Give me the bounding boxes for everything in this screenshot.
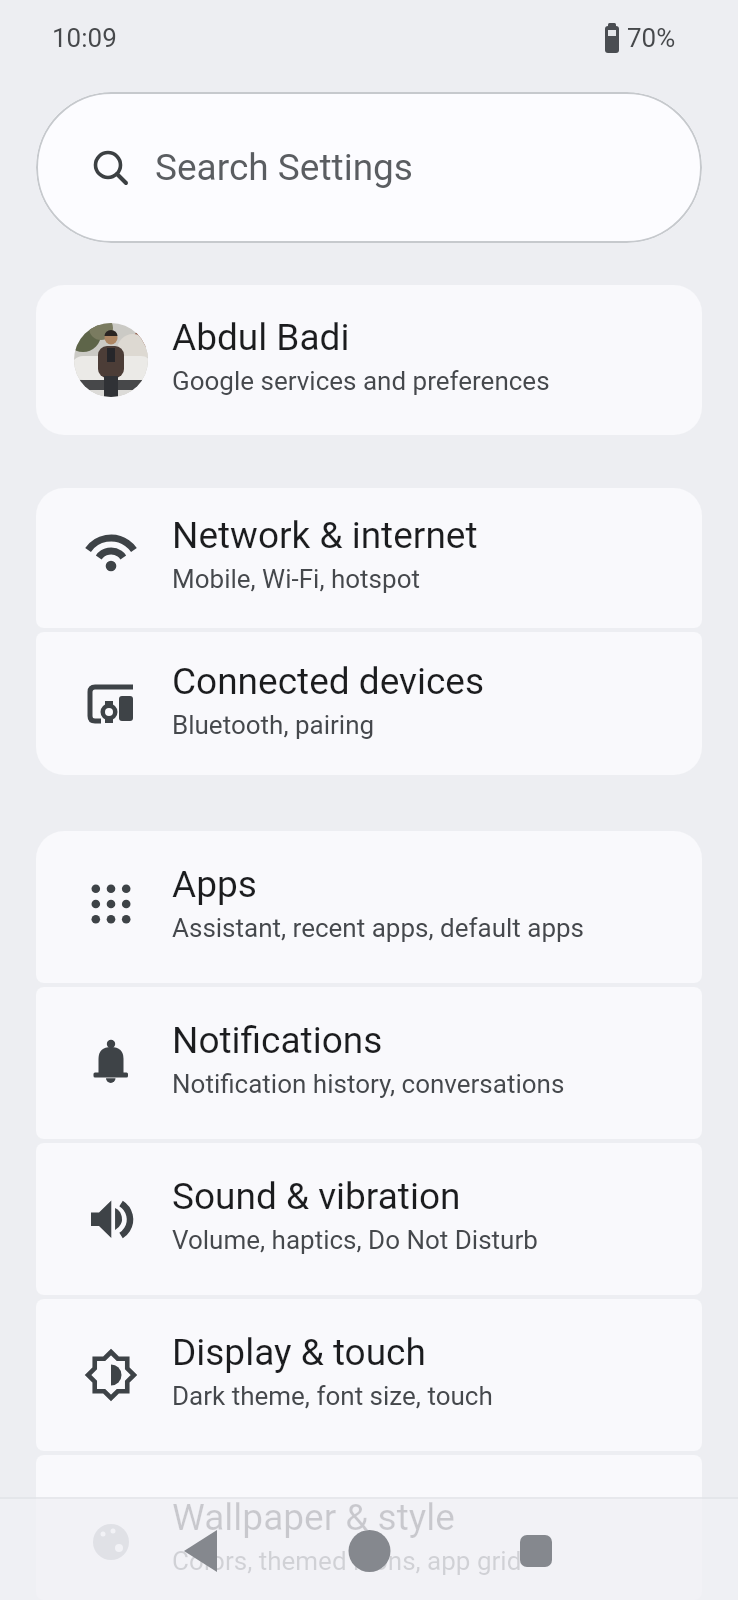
button[interactable]: Connected devices bbox=[36, 632, 702, 775]
staticText: Network & internet bbox=[172, 514, 478, 557]
staticText: 10:09 bbox=[52, 23, 117, 53]
staticText: Google services and preferences bbox=[172, 366, 550, 396]
staticText: Notifications bbox=[172, 1019, 383, 1062]
staticText: Connected devices bbox=[172, 660, 485, 703]
staticText: Bluetooth, pairing bbox=[172, 710, 375, 740]
staticText: Notification history, conversations bbox=[172, 1069, 565, 1099]
button[interactable]: Abdul Badi bbox=[36, 285, 702, 435]
staticText: Abdul Badi bbox=[172, 316, 350, 359]
button[interactable]: Sound & vibration bbox=[36, 1143, 702, 1295]
button[interactable]: Display & touch bbox=[36, 1299, 702, 1451]
staticText: Sound & vibration bbox=[172, 1175, 461, 1218]
staticText: Assistant, recent apps, default apps bbox=[172, 913, 585, 943]
button[interactable]: Network & internet bbox=[36, 488, 702, 628]
button[interactable]: Notifications bbox=[36, 987, 702, 1139]
staticText: Search Settings bbox=[155, 146, 413, 189]
staticText: Display & touch bbox=[172, 1331, 426, 1374]
button[interactable]: Apps bbox=[36, 831, 702, 983]
staticText: Apps bbox=[172, 863, 257, 906]
staticText: Mobile, Wi-Fi, hotspot bbox=[172, 564, 420, 594]
button[interactable]: Search Settings bbox=[36, 92, 702, 243]
staticText: Volume, haptics, Do Not Disturb bbox=[172, 1225, 538, 1255]
button[interactable]: Wallpaper & style bbox=[36, 1455, 702, 1600]
staticText: Colors, themed icons, app grid bbox=[172, 1546, 522, 1576]
staticText: Dark theme, font size, touch bbox=[172, 1381, 493, 1411]
staticText: Wallpaper & style bbox=[172, 1496, 455, 1539]
staticText: 70% bbox=[627, 23, 676, 53]
